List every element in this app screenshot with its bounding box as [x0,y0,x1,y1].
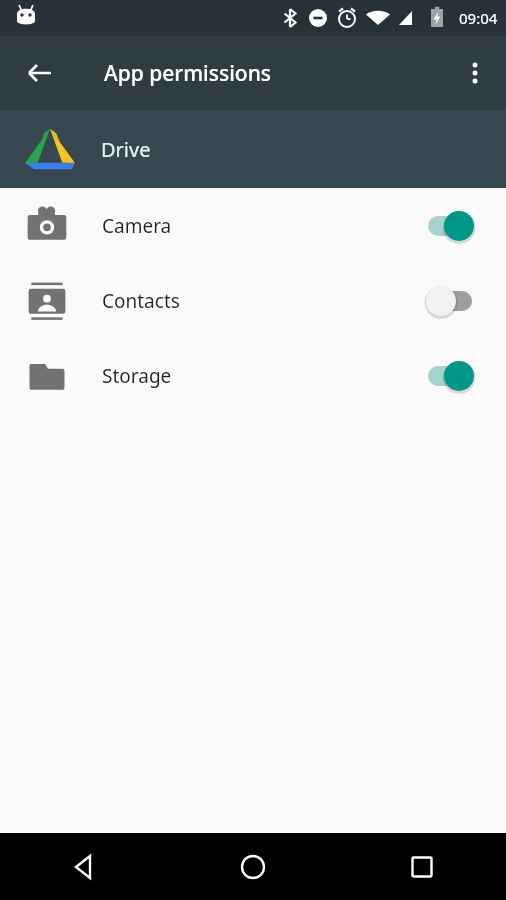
button[interactable]: Back [0,833,168,900]
button[interactable]: On [426,206,478,246]
staticText: App permissions [104,59,272,88]
button[interactable]: Back [18,51,62,95]
staticText: Drive [101,136,151,163]
button[interactable]: Home [168,833,337,900]
button[interactable]: Recents [337,833,506,900]
button[interactable]: Contacts [0,263,506,338]
staticText: Camera [102,213,172,239]
staticText: 09:04 [459,8,498,28]
button[interactable]: Camera [0,188,506,263]
button[interactable]: More options [453,51,497,95]
button[interactable]: Off [426,281,478,321]
button[interactable]: Storage [0,338,506,413]
button[interactable]: Drive [0,110,506,188]
button[interactable]: On [426,356,478,396]
staticText: Storage [102,363,172,389]
staticText: Contacts [102,288,180,314]
